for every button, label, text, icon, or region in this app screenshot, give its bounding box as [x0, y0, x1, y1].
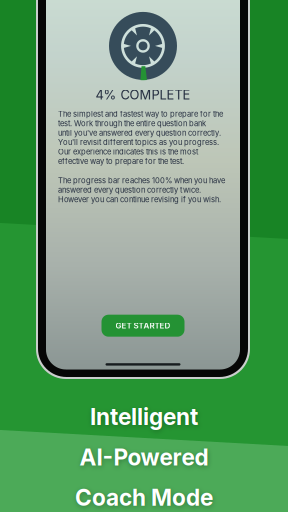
staticText: Our experience indicates this is the mos… [58, 147, 198, 156]
staticText: effective way to prepare for the test. [58, 157, 184, 166]
staticText: GET STARTED [115, 321, 170, 331]
button[interactable]: GET STARTED [101, 315, 184, 337]
staticText: test. Work through the entire question b… [58, 119, 206, 128]
staticText: until you've answered every question cor… [58, 128, 221, 137]
staticText: AI-Powered [79, 443, 208, 471]
staticText: The progress bar reaches 100% when you h… [58, 176, 225, 185]
staticText: answered every question correctly twice. [58, 185, 201, 195]
staticText: Intelligent [90, 403, 198, 430]
staticText: However you can continue revising if you… [58, 195, 221, 204]
staticText: Coach Mode [75, 484, 213, 511]
staticText: You'll revisit different topics as you p… [58, 138, 219, 147]
staticText: 4% COMPLETE [95, 87, 190, 103]
staticText: The simplest and fastest way to prepare … [58, 109, 223, 119]
